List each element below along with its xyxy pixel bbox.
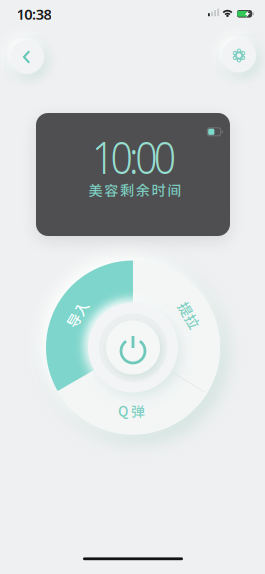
- button[interactable]: Q弹: [46, 260, 220, 434]
- button[interactable]: Power: [106, 320, 160, 374]
- staticText: 10:00: [87, 128, 181, 186]
- staticText: 美容剩余时间: [88, 182, 181, 199]
- staticText: Q 弹: [118, 403, 145, 420]
- staticText: 10:38: [17, 4, 51, 24]
- staticText: 提拉: [174, 307, 202, 324]
- staticText: 导入: [64, 306, 92, 323]
- button[interactable]: Settings: [222, 38, 256, 72]
- button[interactable]: 导入: [46, 260, 220, 434]
- button[interactable]: Back: [10, 40, 44, 74]
- button[interactable]: 提拉: [46, 260, 220, 434]
